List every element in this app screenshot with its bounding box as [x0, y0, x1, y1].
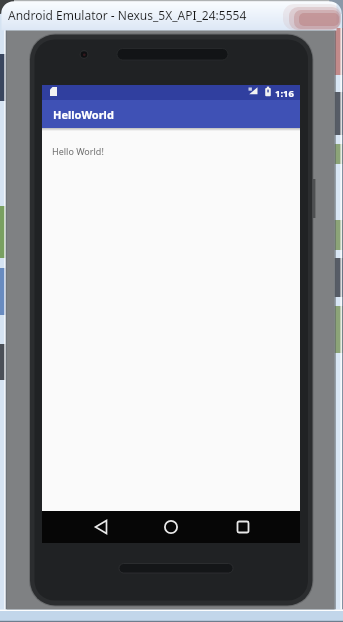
staticText: HelloWorld — [53, 107, 114, 122]
button[interactable] — [229, 513, 257, 541]
button[interactable] — [86, 513, 114, 541]
button[interactable] — [157, 513, 185, 541]
staticText: 1:16 — [275, 87, 294, 100]
staticText: Android Emulator - Nexus_5X_API_24:5554 — [8, 7, 247, 23]
staticText: Hello World! — [52, 145, 104, 157]
